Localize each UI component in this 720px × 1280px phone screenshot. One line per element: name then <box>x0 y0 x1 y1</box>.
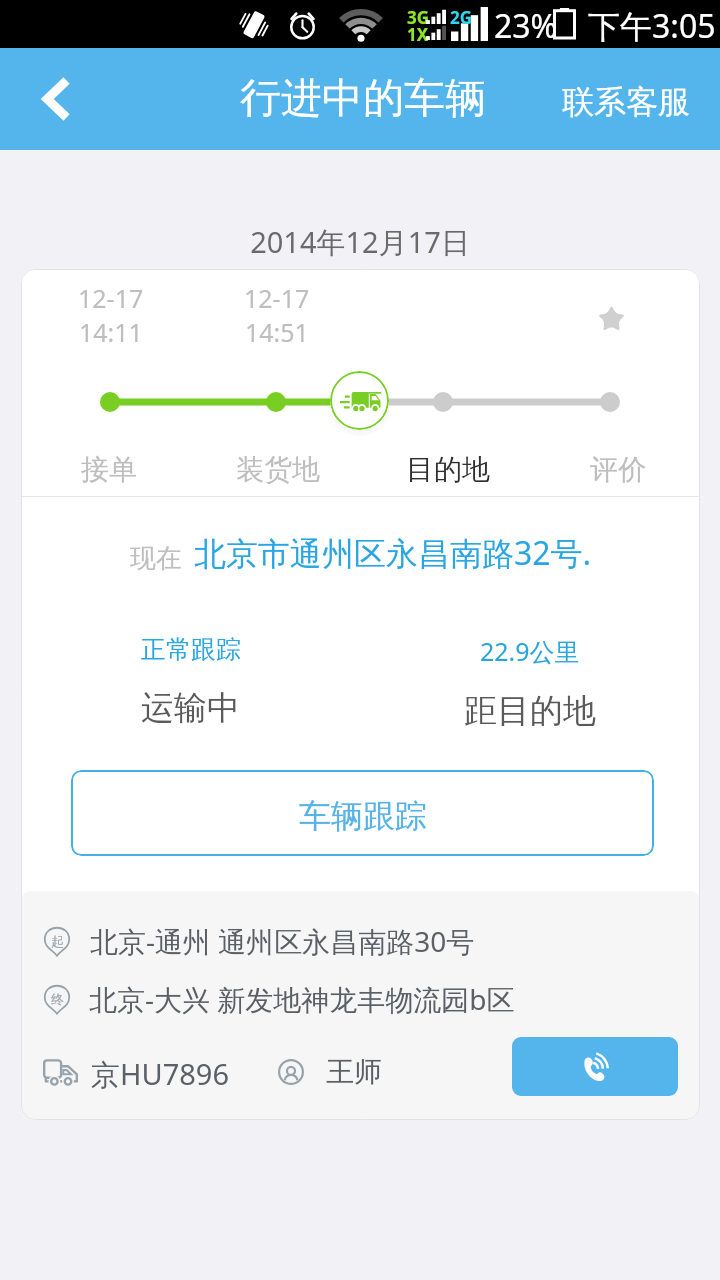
staticText: 12-17 <box>78 281 144 315</box>
staticText: 行进中的车辆 <box>240 73 486 125</box>
staticText: 评价 <box>590 452 646 487</box>
button[interactable]: Back <box>0 48 104 150</box>
staticText: 王师 <box>326 1054 382 1089</box>
staticText: 22.9公里 <box>480 634 580 668</box>
staticText: 目的地 <box>406 452 490 487</box>
staticText: 下午3:05 <box>588 4 716 48</box>
button[interactable]: 车辆跟踪 <box>71 770 654 856</box>
staticText: 距目的地 <box>464 690 596 732</box>
staticText: 运输中 <box>141 687 240 729</box>
staticText: 12-17 <box>244 281 310 315</box>
button[interactable]: 联系客服 <box>540 48 720 150</box>
staticText: 京HU7896 <box>91 1054 230 1094</box>
staticText: 14:51 <box>245 315 309 349</box>
staticText: 装货地 <box>236 452 320 487</box>
staticText: 联系客服 <box>562 82 690 122</box>
staticText: 北京市通州区永昌南路32号. <box>194 531 592 575</box>
staticText: 14:11 <box>79 315 143 349</box>
staticText: 北京-大兴 新发地神龙丰物流园b区 <box>89 980 515 1018</box>
staticText: 接单 <box>81 452 137 487</box>
staticText: 北京-通州 通州区永昌南路30号 <box>90 922 475 960</box>
button[interactable]: 评价 <box>533 449 700 489</box>
staticText: 23% <box>494 4 558 48</box>
staticText: 2014年12月17日 <box>0 222 720 262</box>
button[interactable]: 目的地 <box>363 449 533 489</box>
button[interactable]: 装货地 <box>193 449 363 489</box>
staticText: 2G <box>450 6 473 29</box>
button[interactable]: Call driver <box>512 1037 678 1096</box>
staticText: 现在 <box>130 542 182 575</box>
staticText: 终 <box>51 991 64 1007</box>
staticText: 3G <box>407 6 430 29</box>
staticText: 正常跟踪 <box>141 634 241 665</box>
button[interactable]: 接单 <box>24 449 193 489</box>
staticText: 起 <box>51 933 64 949</box>
staticText: 1X <box>407 23 429 46</box>
staticText: 车辆跟踪 <box>299 796 427 836</box>
